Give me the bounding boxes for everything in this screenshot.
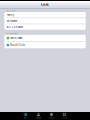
button[interactable]: Software bbox=[4, 18, 86, 24]
staticText: People bbox=[36, 116, 41, 119]
staticText: Recent bbox=[48, 116, 54, 119]
button[interactable]: Work Team bbox=[4, 35, 86, 41]
button[interactable]: Family bbox=[4, 12, 86, 18]
staticText: MY LISTS bbox=[6, 9, 15, 12]
staticText: Work Team bbox=[10, 36, 22, 40]
button[interactable]: All Contacts bbox=[4, 24, 86, 30]
staticText: Family bbox=[7, 13, 14, 17]
staticText: More bbox=[62, 116, 67, 119]
button[interactable]: More bbox=[58, 112, 71, 120]
staticText: Book Club bbox=[10, 43, 25, 47]
button[interactable]: Recent bbox=[45, 112, 58, 120]
staticText: Software bbox=[7, 19, 17, 23]
button[interactable]: Book Club bbox=[4, 42, 86, 48]
staticText: All Contacts bbox=[7, 25, 23, 29]
staticText: Lists bbox=[23, 116, 27, 119]
staticText: SUBSCRIBED bbox=[6, 32, 18, 35]
button[interactable]: Lists bbox=[19, 112, 32, 120]
staticText: Lists bbox=[41, 2, 49, 7]
button[interactable]: People bbox=[32, 112, 45, 120]
